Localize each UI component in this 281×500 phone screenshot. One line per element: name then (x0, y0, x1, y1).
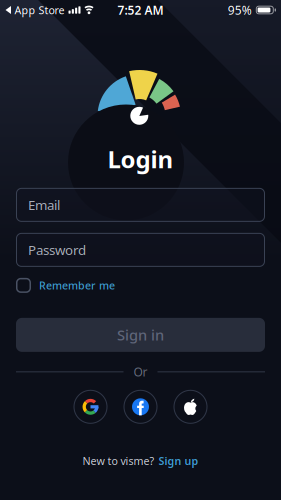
staticText: 95% (228, 2, 252, 18)
button[interactable]: Back to App Store (5, 3, 64, 17)
button[interactable]: Sign up (158, 454, 198, 468)
staticText: App Store (14, 3, 64, 17)
staticText: 7:52 AM (117, 2, 163, 18)
button[interactable]: Sign in (16, 318, 265, 352)
button[interactable]: Password (16, 233, 265, 267)
staticText: New to visme? (82, 454, 154, 468)
button[interactable]: Sign in with Facebook (123, 390, 157, 424)
staticText: Login (107, 143, 173, 175)
staticText: Sign in (117, 325, 164, 345)
staticText: Email (28, 196, 60, 214)
button[interactable]: Email (16, 188, 265, 222)
button[interactable]: Sign in with Apple (173, 390, 207, 424)
staticText: Sign up (158, 454, 198, 468)
staticText: Remember me (39, 278, 115, 292)
staticText: Password (28, 241, 86, 259)
button[interactable]: Sign in with Google (73, 390, 107, 424)
staticText: Or (133, 364, 147, 380)
button[interactable]: Remember me (16, 278, 265, 293)
